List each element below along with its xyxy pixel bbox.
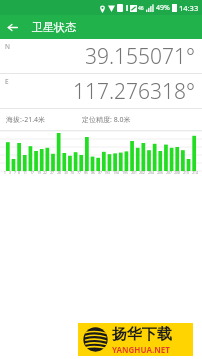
staticText: 85 — [84, 171, 88, 175]
staticText: 201 — [131, 171, 137, 175]
staticText: 70 — [70, 171, 74, 175]
staticText: 202 — [139, 171, 145, 175]
staticText: 195 — [122, 171, 128, 175]
staticText: 卫星状态 — [32, 20, 76, 34]
staticText: 27 — [50, 171, 54, 175]
staticText: 扬华下载 — [112, 325, 172, 344]
staticText: 3 — [9, 171, 11, 175]
staticText: 17 — [30, 171, 34, 175]
staticText: 207 — [166, 171, 172, 175]
button[interactable]: N — [0, 39, 202, 73]
staticText: E — [5, 77, 9, 86]
staticText: 海拔:-21.4米 — [6, 115, 46, 125]
staticText: 11 — [23, 171, 27, 175]
staticText: 19 — [37, 171, 41, 175]
staticText: 28 — [57, 171, 61, 175]
staticText: 8 — [18, 171, 20, 175]
staticText: 22 — [43, 171, 47, 175]
staticText: YANGHUA.NET — [112, 344, 170, 355]
button[interactable]: Back — [0, 15, 24, 39]
staticText: 194 — [113, 171, 119, 175]
staticText: 1 — [4, 171, 6, 175]
staticText: 204 — [148, 171, 154, 175]
staticText: 86 — [91, 171, 95, 175]
staticText: 39.155071° — [85, 42, 196, 71]
staticText: N — [5, 42, 10, 51]
button[interactable]: E — [0, 74, 202, 108]
staticText: 117.276318° — [73, 77, 196, 106]
staticText: 46 — [138, 5, 144, 12]
staticText: 208 — [174, 171, 180, 175]
staticText: 49% — [156, 3, 170, 13]
staticText: 87 — [98, 171, 102, 175]
staticText: 193 — [104, 171, 110, 175]
staticText: 定位精度: 8.0米 — [82, 115, 131, 125]
staticText: 214 — [192, 171, 198, 175]
staticText: 206 — [157, 171, 163, 175]
staticText: 30 — [64, 171, 68, 175]
staticText: 77 — [77, 171, 81, 175]
staticText: 210 — [183, 171, 189, 175]
staticText: 7 — [14, 171, 16, 175]
staticText: 14:33 — [179, 3, 199, 13]
